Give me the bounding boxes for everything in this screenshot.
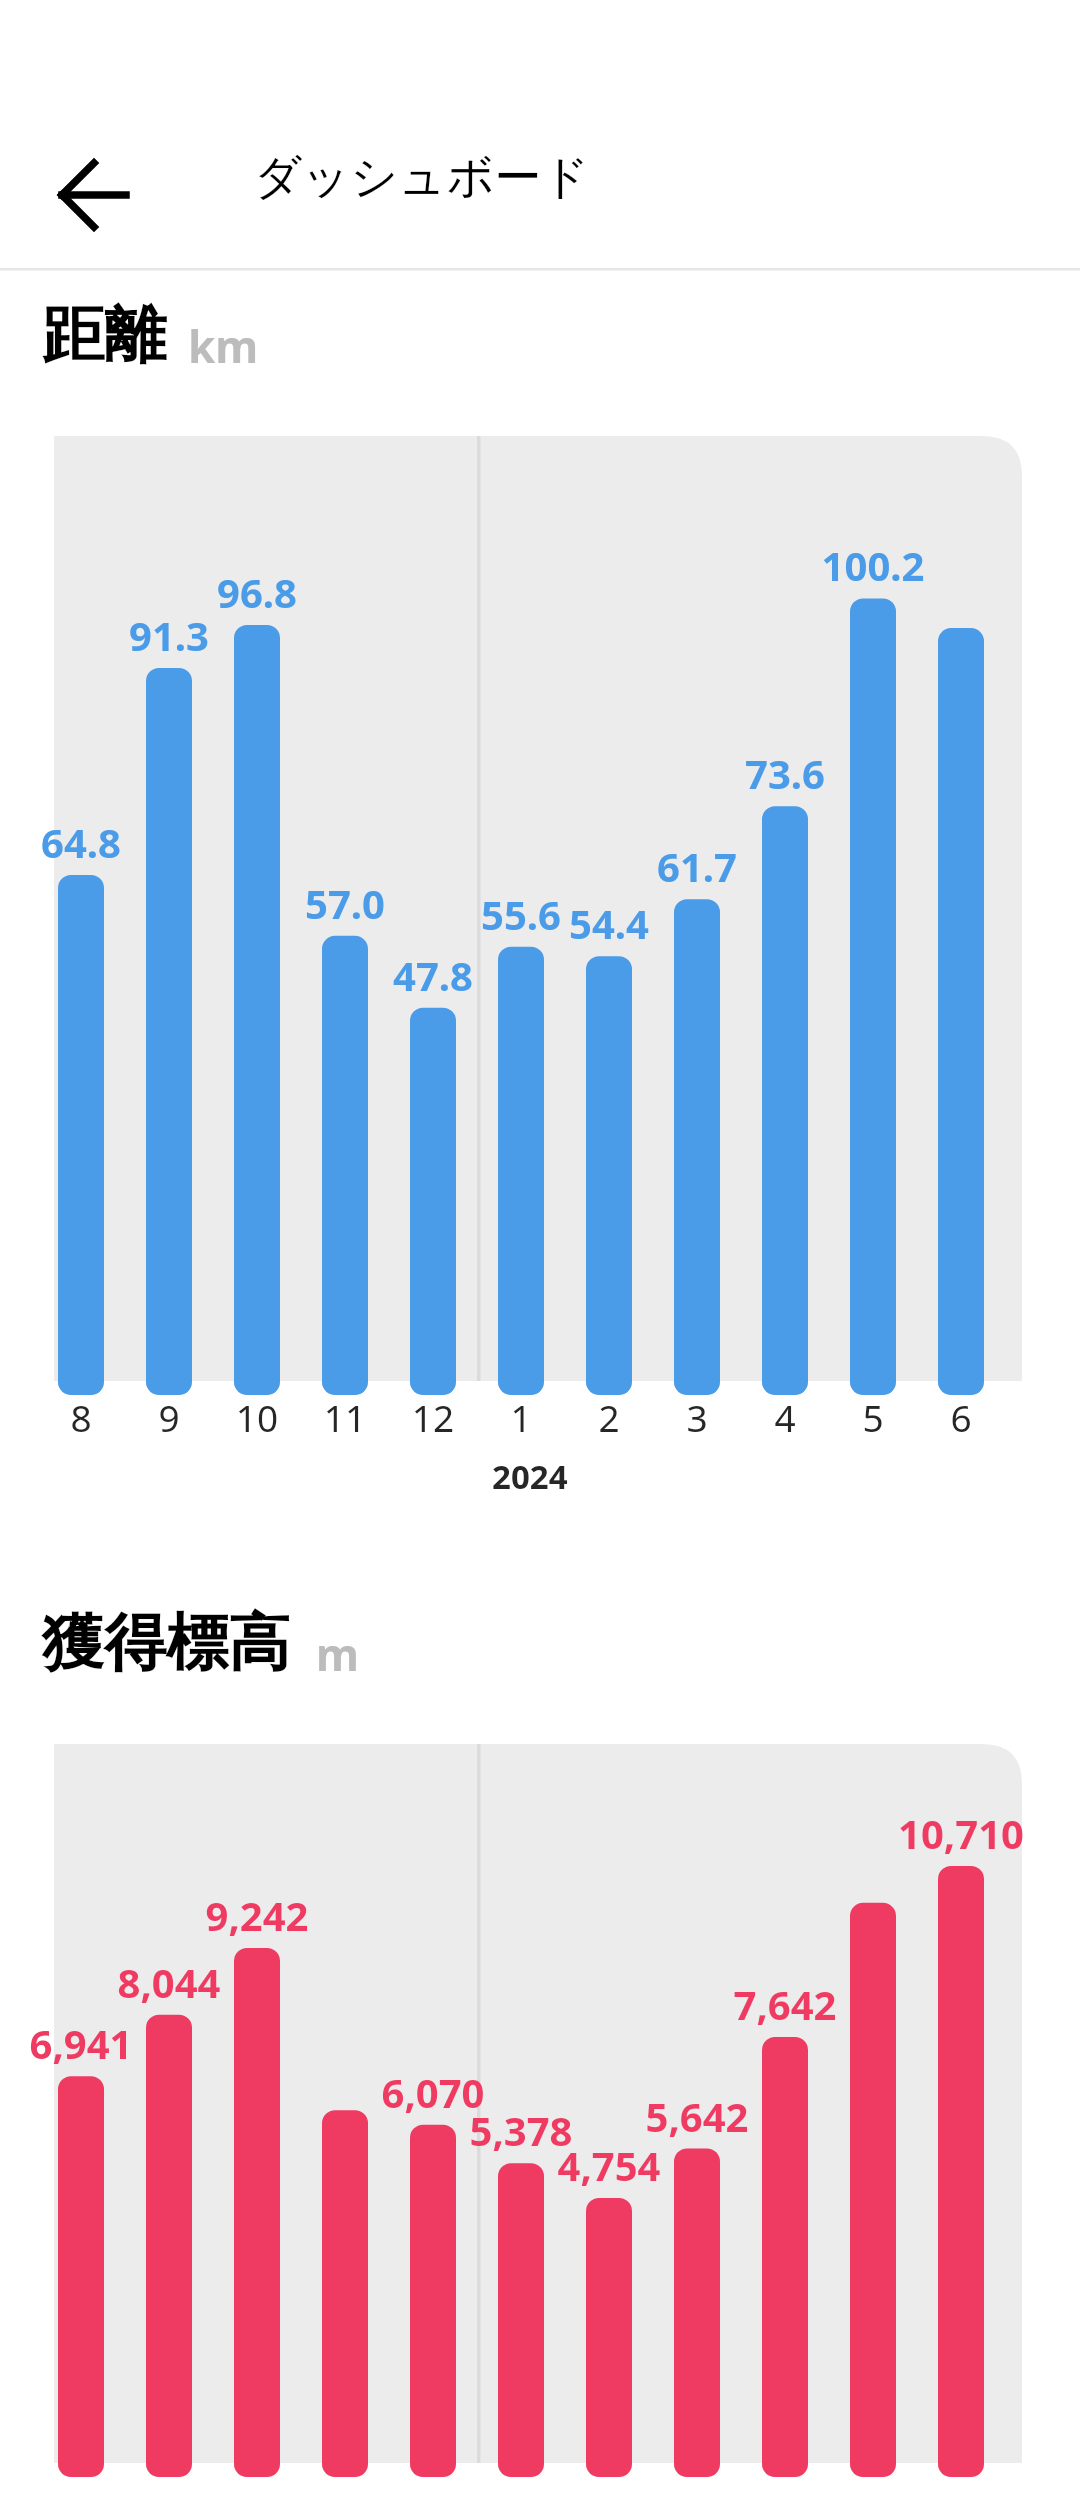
- staticText: 1: [491, 1392, 551, 1452]
- staticText: 11: [315, 1392, 375, 1452]
- staticText: 8: [51, 1392, 111, 1452]
- staticText: 7,642: [695, 1977, 875, 2032]
- staticText: 4: [755, 1392, 815, 1452]
- staticText: 距離: [42, 296, 166, 374]
- staticText: 5: [843, 1392, 903, 1452]
- staticText: 61.7: [607, 839, 787, 894]
- staticText: 91.3: [79, 608, 259, 663]
- staticText: 100.2: [783, 538, 963, 593]
- staticText: 54.4: [519, 896, 699, 951]
- staticText: 6,941: [0, 2016, 171, 2071]
- button[interactable]: Back: [40, 140, 150, 250]
- staticText: 6: [931, 1392, 991, 1452]
- staticText: 96.8: [167, 565, 347, 620]
- staticText: 10,710: [871, 1806, 1051, 1861]
- staticText: 57.0: [255, 876, 435, 931]
- staticText: 10: [227, 1392, 287, 1452]
- staticText: 9,242: [167, 1888, 347, 1943]
- staticText: 2: [579, 1392, 639, 1452]
- staticText: ダッシュボード: [254, 148, 590, 207]
- staticText: 8,044: [79, 1955, 259, 2010]
- staticText: 4,754: [519, 2138, 699, 2193]
- staticText: 9: [139, 1392, 199, 1452]
- staticText: 12: [403, 1392, 463, 1452]
- staticText: 64.8: [0, 815, 171, 870]
- staticText: 獲得標高: [42, 1604, 290, 1682]
- staticText: km: [188, 316, 259, 376]
- staticText: 6,070: [343, 2065, 523, 2120]
- staticText: 47.8: [343, 948, 523, 1003]
- staticText: 5,378: [431, 2103, 611, 2158]
- staticText: 2024: [492, 1454, 568, 1499]
- staticText: 5,642: [607, 2089, 787, 2144]
- staticText: m: [316, 1624, 359, 1684]
- staticText: 3: [667, 1392, 727, 1452]
- staticText: 73.6: [695, 746, 875, 801]
- staticText: 55.6: [431, 887, 611, 942]
